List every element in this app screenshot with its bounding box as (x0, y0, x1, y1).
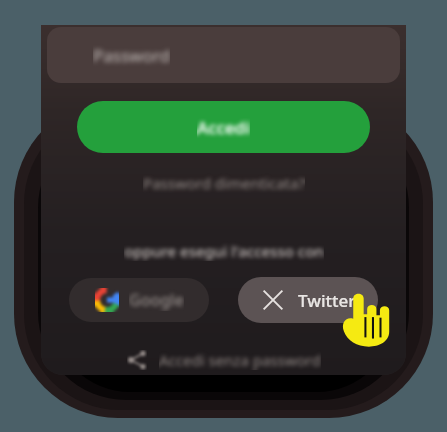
button[interactable]: Google (69, 278, 209, 322)
staticText: oppure esegui l'accesso con (124, 241, 324, 261)
staticText: Accedi senza password (159, 350, 321, 370)
button[interactable]: Password dimenticata? (41, 173, 406, 193)
button[interactable]: Password (47, 27, 400, 83)
staticText: Password (93, 44, 170, 67)
staticText: Google (129, 289, 184, 311)
staticText: Accedi (197, 116, 250, 139)
button[interactable]: Accedi senza password (41, 345, 406, 375)
button[interactable]: Twitter (238, 277, 378, 323)
button[interactable]: Accedi (77, 101, 370, 153)
staticText: Password dimenticata? (143, 173, 305, 193)
staticText: Twitter (298, 289, 356, 312)
other: Pointer (337, 291, 395, 349)
